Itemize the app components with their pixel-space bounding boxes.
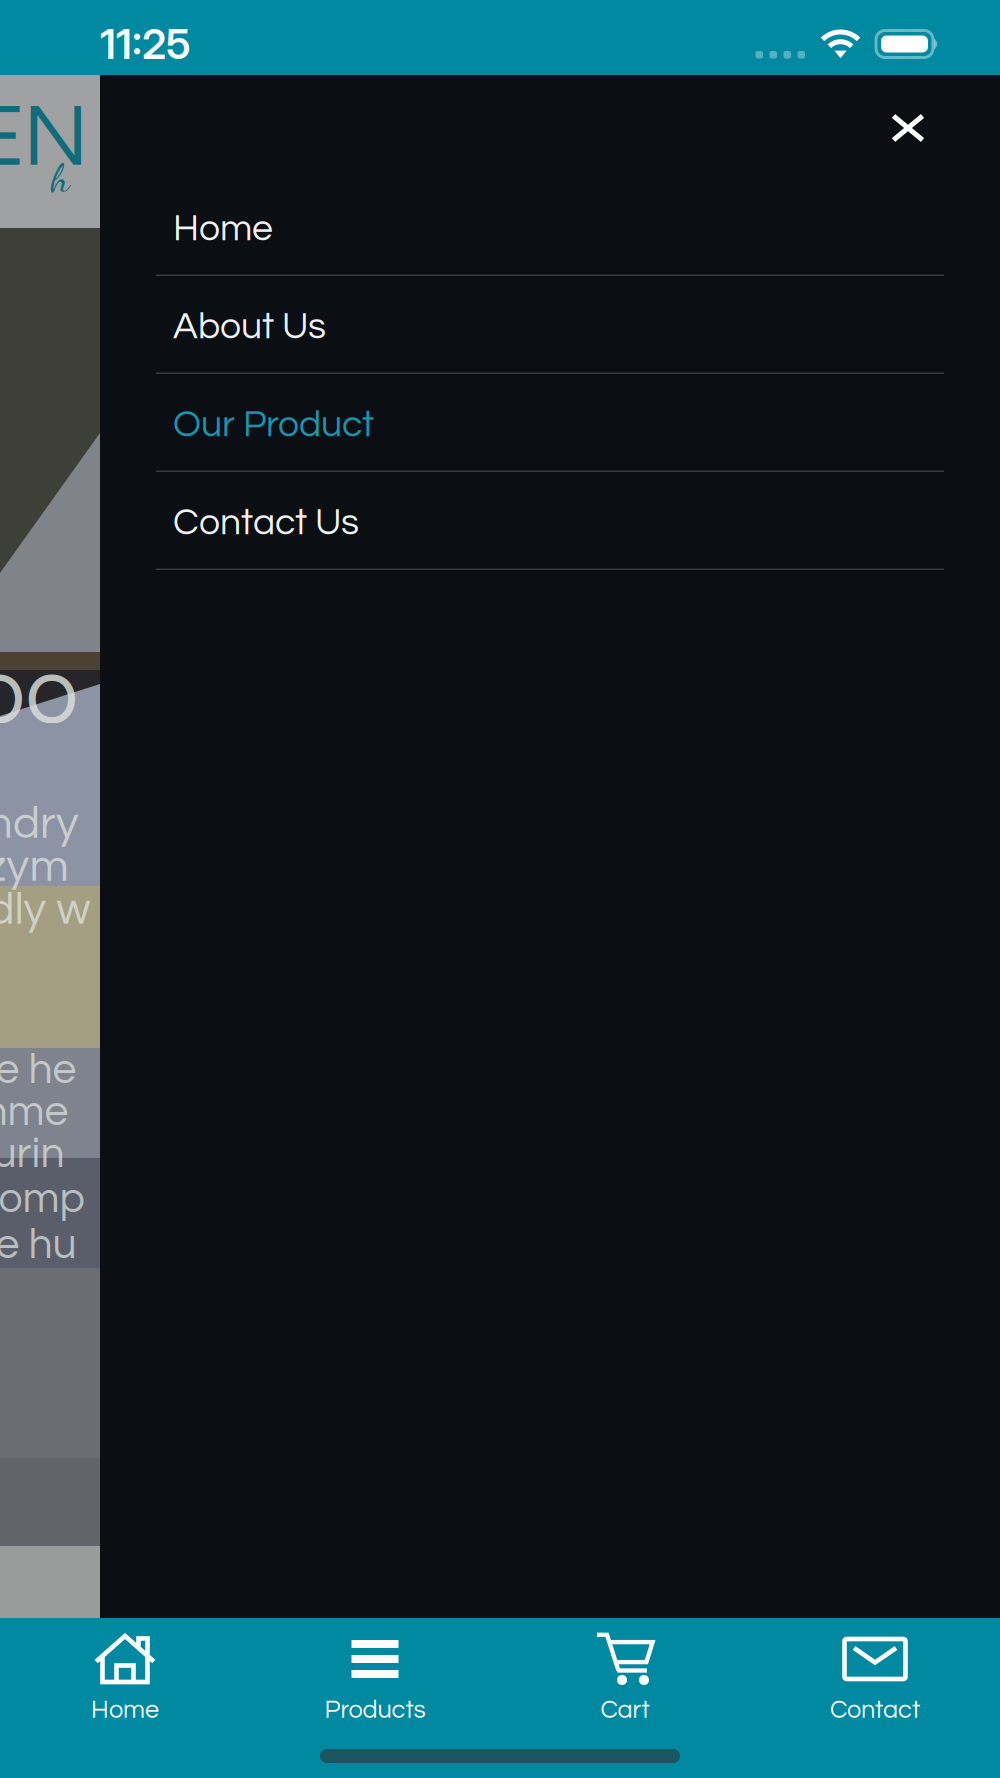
- button[interactable]: Close menu: [872, 92, 944, 164]
- staticText: nzym: [0, 844, 68, 890]
- staticText: EN: [0, 93, 88, 183]
- staticText: 11:25: [100, 19, 191, 69]
- staticText: Contact Us: [173, 503, 359, 542]
- staticText: he hu: [0, 1223, 76, 1267]
- staticText: Home: [91, 1697, 159, 1723]
- button[interactable]: Contact Us: [156, 472, 944, 570]
- staticText: onme: [0, 1090, 68, 1134]
- staticText: h: [50, 154, 69, 202]
- staticText: About Us: [173, 307, 326, 346]
- staticText: comp: [0, 1177, 84, 1221]
- button[interactable]: Our Product: [156, 374, 944, 472]
- button[interactable]: Contact: [750, 1618, 1000, 1778]
- button[interactable]: About Us: [156, 276, 944, 374]
- button[interactable]: Cart: [500, 1618, 750, 1778]
- staticText: Cart: [600, 1697, 649, 1723]
- staticText: ndly w: [0, 887, 90, 933]
- button[interactable]: Products: [250, 1618, 500, 1778]
- button[interactable]: Home: [156, 178, 944, 276]
- staticText: cturin: [0, 1132, 64, 1176]
- staticText: undry: [0, 801, 79, 847]
- staticText: he he: [0, 1048, 76, 1092]
- staticText: Products: [324, 1697, 425, 1723]
- staticText: Contact: [830, 1697, 920, 1723]
- staticText: roo: [0, 646, 78, 742]
- staticText: Our Product: [173, 405, 374, 444]
- button[interactable]: Home: [0, 1618, 250, 1778]
- staticText: Home: [173, 209, 273, 248]
